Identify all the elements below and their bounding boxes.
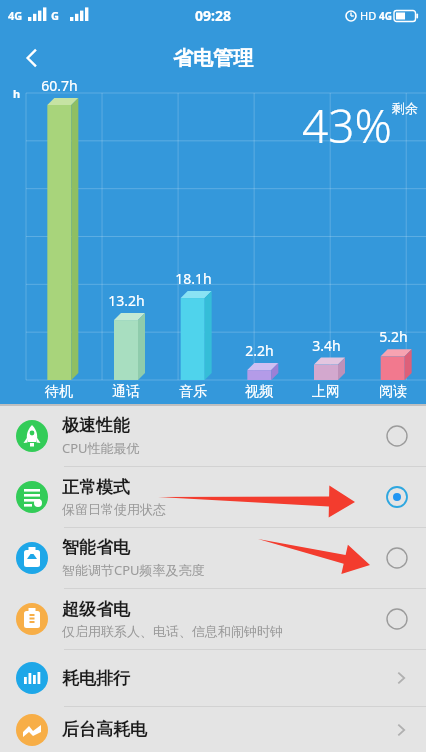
staticText: 智能省电 [62,537,130,558]
button[interactable]: 智能省电 [0,528,426,588]
staticText: 上网 [312,383,340,401]
staticText: 5.2h [379,327,408,346]
staticText: 3.4h [312,336,341,355]
staticText: 4G [8,8,23,23]
staticText: CPU性能最优 [62,439,140,457]
staticText: 仅启用联系人、电话、信息和闹钟时钟 [62,623,283,639]
staticText: 阅读 [379,383,407,401]
button[interactable]: 正常模式 [0,467,426,527]
staticText: G [51,8,59,23]
staticText: 后台高耗电 [62,719,392,740]
staticText: 智能调节CPU频率及亮度 [62,561,205,579]
staticText: 视频 [245,383,273,401]
staticText: 18.1h [175,269,212,288]
staticText: h [13,86,21,101]
button[interactable]: 超级省电 [0,589,426,649]
staticText: 音乐 [179,383,207,401]
staticText: HD [360,8,377,23]
staticText: 4G [379,9,392,23]
button[interactable]: Back [10,36,54,80]
staticText: 43% [302,94,392,157]
staticText: 待机 [45,383,73,401]
staticText: 剩余 [392,100,418,116]
button[interactable]: 后台高耗电 [0,707,426,752]
staticText: 超级省电 [62,599,130,620]
button[interactable]: 极速性能 [0,406,426,466]
staticText: 保留日常使用状态 [62,501,166,517]
staticText: 13.2h [108,291,145,310]
staticText: 60.7h [41,76,78,95]
button[interactable]: 耗电排行 [0,650,426,706]
staticText: 09:28 [195,6,231,25]
staticText: 极速性能 [62,415,130,436]
staticText: 耗电排行 [62,668,392,689]
staticText: 省电管理 [173,46,253,71]
staticText: 2.2h [245,341,274,360]
staticText: 通话 [112,383,140,401]
staticText: 正常模式 [62,477,130,498]
